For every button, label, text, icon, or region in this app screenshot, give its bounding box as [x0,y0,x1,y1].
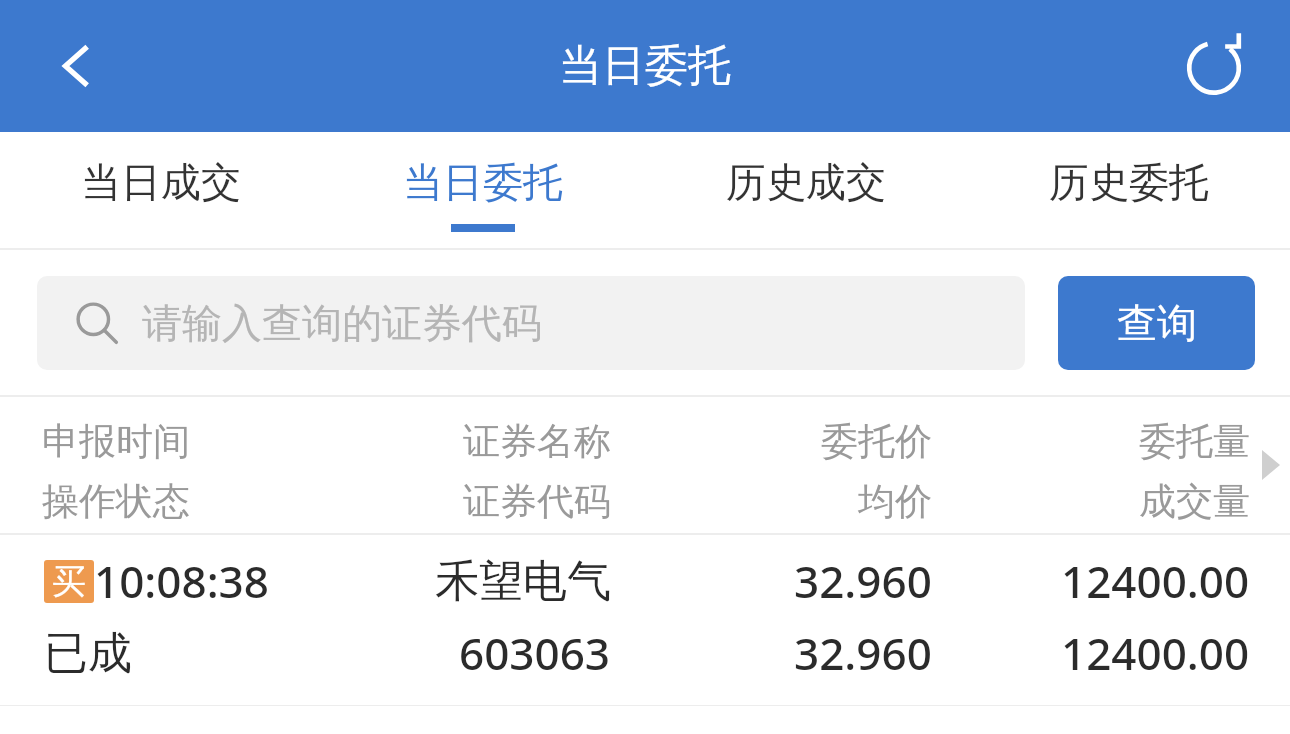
staticText: 委托量 [1139,418,1250,465]
button[interactable]: 买 [0,535,1290,705]
staticText: 请输入查询的证券代码 [142,298,542,348]
button[interactable]: 查询 [1058,276,1255,370]
staticText: 12400.00 [1061,623,1250,683]
staticText: 证券名称 [463,418,611,465]
staticText: 32.960 [794,623,932,683]
button[interactable]: 历史委托 [967,132,1290,250]
button[interactable]: Back [30,20,122,112]
button[interactable]: 请输入查询的证券代码 [37,276,1025,370]
staticText: 10:08:38 [94,551,269,611]
staticText: 当日委托 [559,39,731,93]
staticText: 历史委托 [1049,157,1209,207]
staticText: 委托价 [821,418,932,465]
staticText: 历史成交 [726,157,886,207]
staticText: 当日成交 [81,157,241,207]
staticText: 查询 [1117,298,1197,348]
button[interactable]: Refresh [1168,20,1260,112]
button[interactable]: 历史成交 [644,132,967,250]
staticText: 证券代码 [463,478,611,525]
staticText: 买 [52,560,86,603]
staticText: 603063 [459,623,611,683]
staticText: 32.960 [794,551,932,611]
button[interactable]: 当日委托 [322,132,644,250]
staticText: 成交量 [1139,478,1250,525]
button[interactable]: 当日成交 [0,132,322,250]
staticText: 12400.00 [1061,551,1250,611]
staticText: 已成 [44,626,132,681]
staticText: 操作状态 [42,478,190,525]
staticText: 申报时间 [42,418,190,465]
staticText: 当日委托 [403,157,563,207]
staticText: 禾望电气 [435,554,611,609]
staticText: 均价 [858,478,932,525]
